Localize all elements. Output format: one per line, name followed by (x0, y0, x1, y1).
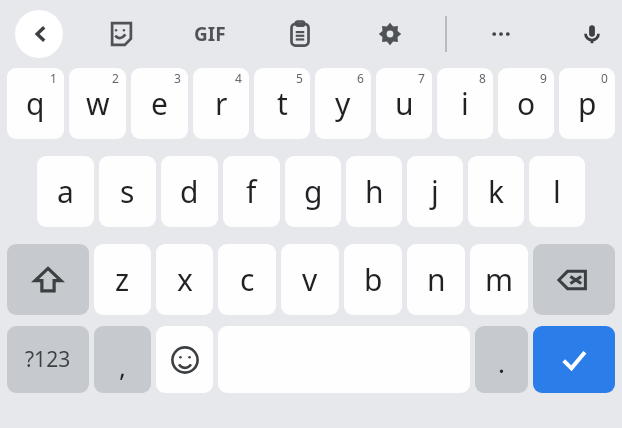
button[interactable]: t (254, 68, 310, 139)
button[interactable]: , (94, 326, 151, 393)
button[interactable]: z (94, 244, 151, 315)
staticText: h (365, 171, 384, 212)
button[interactable]: Stickers (95, 10, 145, 58)
staticText: 5 (296, 70, 303, 86)
button[interactable]: Clipboard (275, 10, 325, 58)
staticText: o (517, 83, 536, 124)
staticText: . (498, 345, 505, 380)
button[interactable]: g (285, 156, 341, 227)
button[interactable]: b (344, 244, 402, 315)
button[interactable]: i (437, 68, 493, 139)
button[interactable]: Shift (7, 244, 89, 315)
staticText: 3 (174, 70, 181, 86)
button[interactable]: Back (15, 10, 63, 58)
button[interactable]: v (281, 244, 339, 315)
button[interactable]: k (468, 156, 524, 227)
staticText: l (553, 171, 561, 212)
staticText: k (488, 171, 505, 212)
staticText: d (180, 171, 199, 212)
staticText: 2 (112, 70, 119, 86)
staticText: 7 (418, 70, 425, 86)
staticText: a (57, 171, 74, 212)
button[interactable]: w (69, 68, 126, 139)
staticText: x (177, 259, 193, 300)
staticText: j (431, 171, 439, 212)
staticText: e (151, 83, 168, 124)
button[interactable]: m (470, 244, 528, 315)
button[interactable]: More options (476, 10, 526, 58)
button[interactable]: a (37, 156, 94, 227)
staticText: c (240, 259, 255, 300)
staticText: p (578, 83, 597, 124)
button[interactable]: e (131, 68, 188, 139)
staticText: ?123 (25, 345, 71, 374)
staticText: u (395, 83, 414, 124)
staticText: 4 (235, 70, 242, 86)
staticText: n (427, 259, 446, 300)
button[interactable]: s (99, 156, 156, 227)
staticText: 0 (601, 70, 608, 86)
button[interactable]: Emoji (156, 326, 213, 393)
staticText: v (302, 259, 318, 300)
button[interactable]: q (7, 68, 64, 139)
button[interactable]: d (161, 156, 218, 227)
staticText: g (304, 171, 323, 212)
staticText: 9 (540, 70, 547, 86)
button[interactable]: Voice input (567, 10, 617, 58)
staticText: z (115, 259, 130, 300)
button[interactable]: Settings (365, 10, 415, 58)
staticText: m (485, 259, 514, 300)
staticText: f (246, 171, 257, 212)
staticText: y (335, 83, 351, 124)
button[interactable]: x (156, 244, 213, 315)
button[interactable]: . (475, 326, 528, 393)
staticText: 1 (50, 70, 57, 86)
button[interactable]: y (315, 68, 371, 139)
button[interactable]: ?123 (7, 326, 89, 393)
button[interactable]: f (223, 156, 280, 227)
staticText: s (120, 171, 135, 212)
button[interactable]: p (559, 68, 615, 139)
button[interactable]: c (218, 244, 276, 315)
button[interactable]: h (346, 156, 402, 227)
staticText: 6 (357, 70, 364, 86)
button[interactable]: r (193, 68, 249, 139)
button[interactable]: GIF (182, 10, 238, 58)
staticText: i (461, 83, 469, 124)
button[interactable]: u (376, 68, 432, 139)
staticText: b (364, 259, 383, 300)
staticText: r (215, 83, 228, 124)
button[interactable]: o (498, 68, 554, 139)
staticText: w (86, 83, 110, 124)
staticText: q (26, 83, 45, 124)
button[interactable]: l (529, 156, 585, 227)
button[interactable]: n (407, 244, 465, 315)
staticText: , (119, 349, 126, 384)
staticText: 8 (479, 70, 486, 86)
staticText: t (277, 83, 288, 124)
staticText: GIF (194, 21, 226, 47)
button[interactable]: Backspace (533, 244, 615, 315)
button[interactable]: Enter (533, 326, 615, 393)
button[interactable]: j (407, 156, 463, 227)
